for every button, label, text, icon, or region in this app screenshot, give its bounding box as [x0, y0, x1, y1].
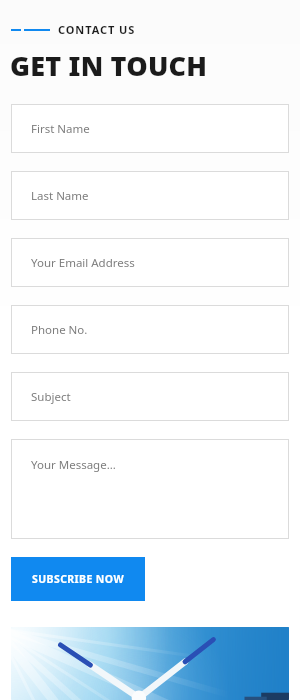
button[interactable]: Your Message...: [11, 439, 289, 539]
button[interactable]: SUBSCRIBE NOW: [11, 557, 145, 601]
button[interactable]: First Name: [11, 104, 289, 153]
staticText: Your Message...: [31, 457, 116, 473]
button[interactable]: Subject: [11, 372, 289, 421]
staticText: First Name: [31, 121, 90, 137]
staticText: Phone No.: [31, 322, 88, 338]
button[interactable]: Last Name: [11, 171, 289, 220]
other: Wind turbine photo: [11, 627, 289, 700]
staticText: CONTACT US: [58, 22, 136, 37]
staticText: Last Name: [31, 188, 89, 204]
staticText: GET IN TOUCH: [10, 47, 208, 84]
staticText: Your Email Address: [31, 255, 135, 271]
staticText: SUBSCRIBE NOW: [32, 572, 124, 586]
button[interactable]: Phone No.: [11, 305, 289, 354]
button[interactable]: Your Email Address: [11, 238, 289, 287]
staticText: Subject: [31, 389, 71, 405]
